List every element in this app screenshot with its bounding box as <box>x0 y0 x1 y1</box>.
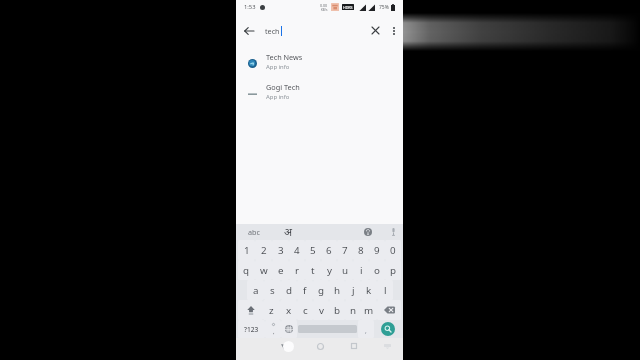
staticText: y <box>327 264 332 277</box>
staticText: Gogi Tech <box>266 82 300 92</box>
staticText: 8 <box>358 244 364 257</box>
button[interactable]: o <box>369 260 385 280</box>
button[interactable]: ?123 <box>238 320 265 338</box>
button[interactable]: g <box>313 280 329 300</box>
staticText: HDRS <box>343 5 353 10</box>
button[interactable]: अ <box>284 225 293 239</box>
staticText: k <box>366 284 372 297</box>
staticText: 0 <box>390 244 396 257</box>
button[interactable]: Back <box>276 336 296 356</box>
button[interactable]: 0 <box>385 240 401 260</box>
button[interactable]: i <box>353 260 369 280</box>
button[interactable]: f <box>297 280 313 300</box>
staticText: p <box>390 264 397 277</box>
button[interactable]: Home <box>310 336 330 356</box>
button[interactable]: a <box>247 280 264 300</box>
staticText: App info <box>266 63 290 71</box>
staticText: h <box>334 284 341 297</box>
button[interactable]: c <box>297 300 313 320</box>
button[interactable]: Backspace <box>377 300 401 320</box>
button[interactable]: abc <box>248 227 260 237</box>
button[interactable]: Hide keyboard <box>377 336 397 356</box>
button[interactable]: x <box>280 300 297 320</box>
button[interactable]: n <box>345 300 361 320</box>
staticText: abc <box>248 227 260 237</box>
staticText: z <box>269 304 274 317</box>
button[interactable]: 2 <box>255 240 272 260</box>
button[interactable]: d <box>281 280 297 300</box>
button[interactable]: u <box>337 260 353 280</box>
button[interactable]: 7 <box>337 240 353 260</box>
button[interactable]: 1 <box>238 240 255 260</box>
staticText: a <box>253 284 259 297</box>
staticText: 4 <box>294 244 300 257</box>
button[interactable]: b <box>329 300 345 320</box>
button[interactable]: e <box>272 260 289 280</box>
button[interactable]: Recent apps <box>344 336 364 356</box>
button[interactable]: Voice input <box>386 224 400 240</box>
button[interactable]: 5 <box>305 240 321 260</box>
staticText: 9 <box>374 244 380 257</box>
staticText: c <box>303 304 308 317</box>
staticText: 75% <box>379 4 389 11</box>
staticText: i <box>360 264 363 277</box>
button[interactable]: Tech News <box>236 47 403 76</box>
staticText: q <box>243 264 250 277</box>
staticText: KB/s <box>321 8 328 12</box>
staticText: m <box>364 304 374 317</box>
staticText: x <box>286 304 292 317</box>
staticText: u <box>342 264 349 277</box>
button[interactable]: , <box>358 320 374 338</box>
button[interactable]: 4 <box>289 240 305 260</box>
button[interactable]: 8 <box>353 240 369 260</box>
staticText: f <box>303 284 307 297</box>
button[interactable]: m <box>361 300 377 320</box>
button[interactable]: l <box>377 280 393 300</box>
button[interactable]: Gogi Tech <box>236 77 403 106</box>
staticText: 2 <box>261 244 267 257</box>
staticText: g <box>318 284 325 297</box>
staticText: d <box>286 284 293 297</box>
staticText: n <box>350 304 357 317</box>
button[interactable]: z <box>263 300 280 320</box>
staticText: b <box>334 304 341 317</box>
staticText: w <box>260 264 268 277</box>
staticText: s <box>270 284 275 297</box>
button[interactable]: Help <box>361 224 375 240</box>
button[interactable]: v <box>313 300 329 320</box>
button[interactable]: 6 <box>321 240 337 260</box>
staticText: 0.00 <box>320 3 328 8</box>
staticText: , <box>273 328 275 336</box>
staticText: ?123 <box>244 325 259 334</box>
staticText: t <box>311 264 315 277</box>
button[interactable]: Search <box>374 320 401 338</box>
button[interactable]: r <box>289 260 305 280</box>
button[interactable]: tech <box>261 14 365 47</box>
staticText: 6 <box>326 244 332 257</box>
button[interactable]: More options <box>385 14 403 47</box>
staticText: e <box>278 264 284 277</box>
button[interactable]: s <box>264 280 281 300</box>
button[interactable]: t <box>305 260 321 280</box>
button[interactable]: j <box>345 280 361 300</box>
button[interactable]: Shift <box>238 300 263 320</box>
button[interactable]: w <box>255 260 272 280</box>
button[interactable]: y <box>321 260 337 280</box>
button[interactable]: q <box>238 260 255 280</box>
button[interactable]: Navigate up <box>236 14 261 47</box>
button[interactable]: h <box>329 280 345 300</box>
staticText: अ <box>284 225 293 239</box>
button[interactable]: k <box>361 280 377 300</box>
button[interactable]: Clear query <box>365 14 385 47</box>
staticText: 1 <box>244 244 250 257</box>
staticText: 1:53 <box>244 3 256 11</box>
staticText: 7 <box>342 244 348 257</box>
button[interactable]: 9 <box>369 240 385 260</box>
button[interactable]: p <box>385 260 401 280</box>
button[interactable]: Change language <box>281 320 297 338</box>
button[interactable]: , <box>265 320 281 338</box>
staticText: v <box>319 304 324 317</box>
button[interactable]: 3 <box>272 240 289 260</box>
staticText: Tech News <box>266 52 303 62</box>
